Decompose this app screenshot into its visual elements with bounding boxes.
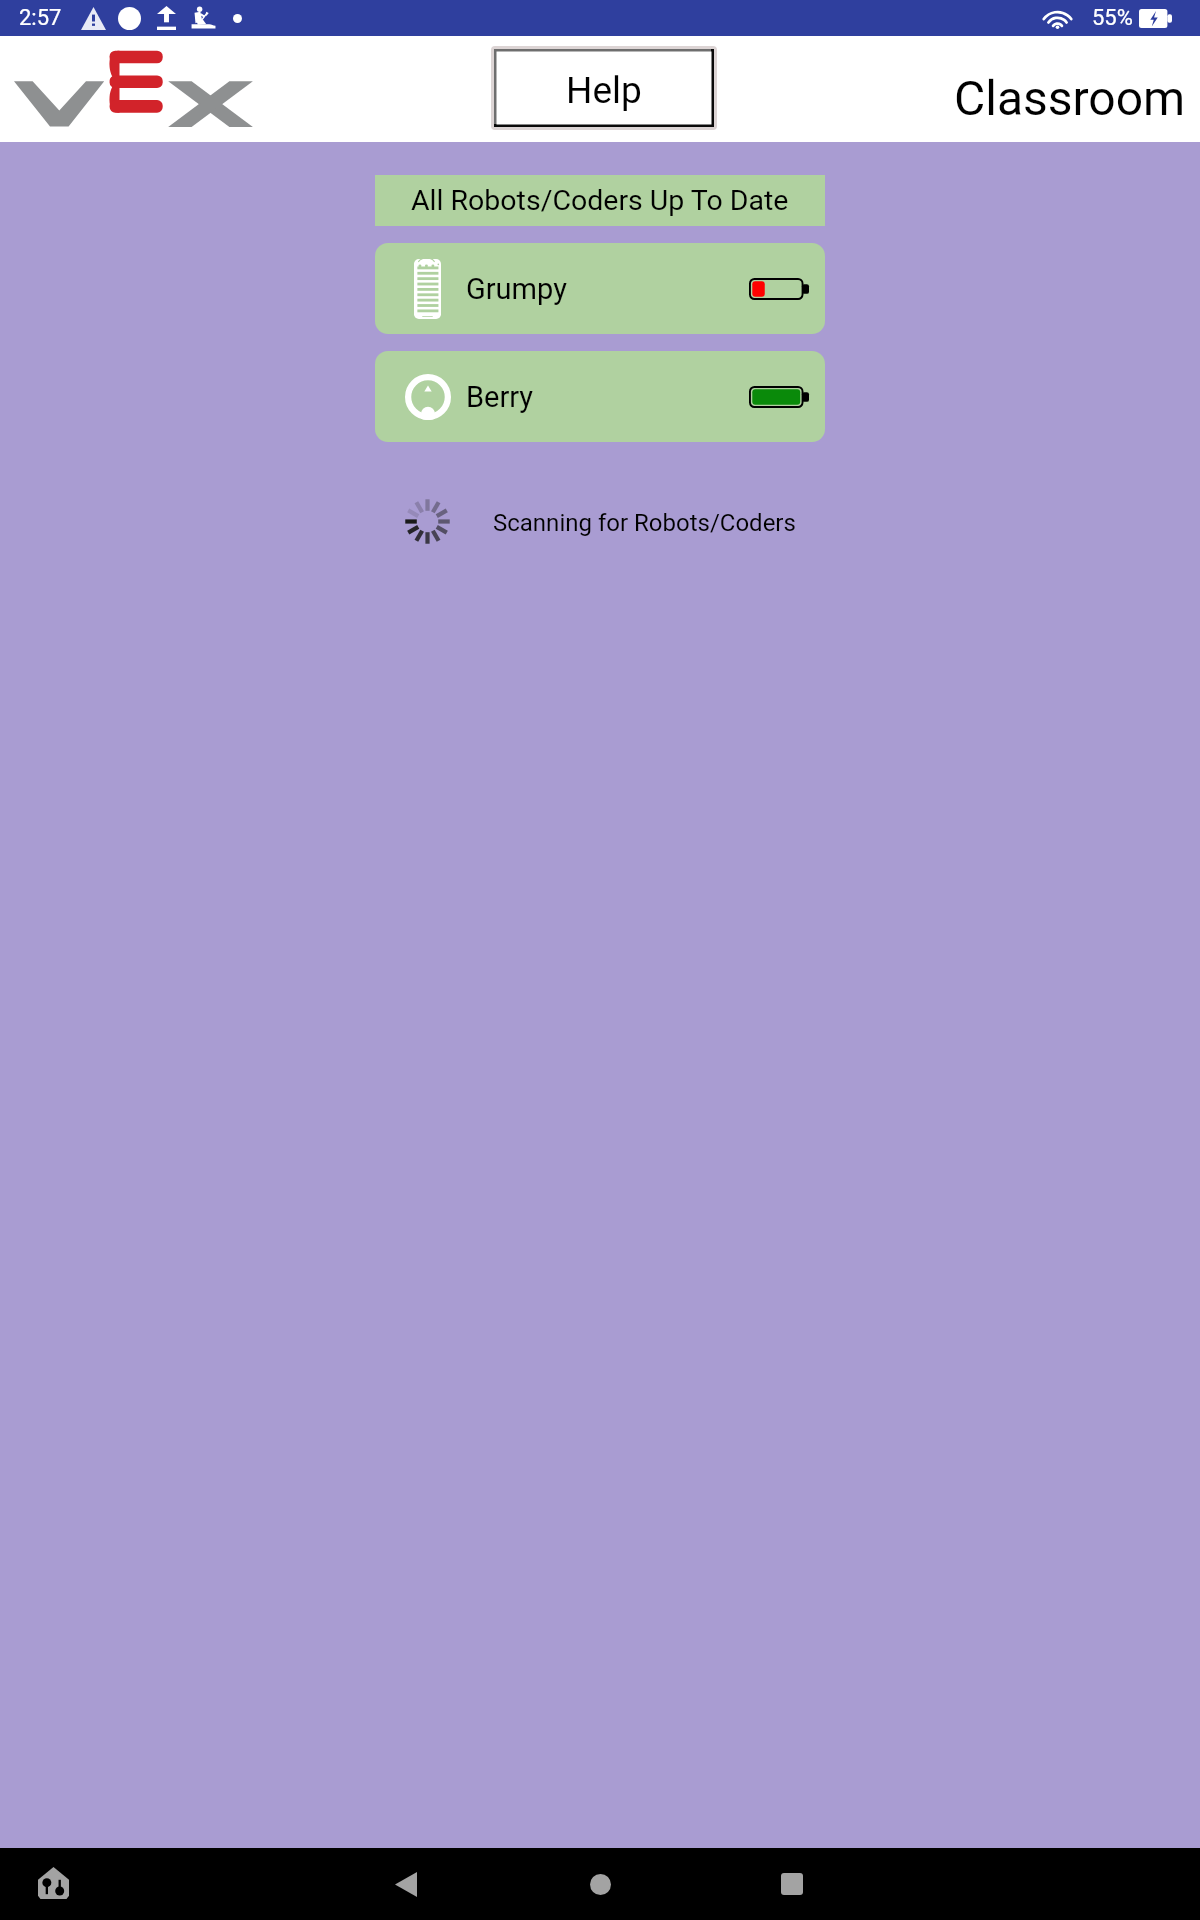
button[interactable]: Berry bbox=[375, 351, 825, 442]
button[interactable]: All Robots/Coders Up To Date bbox=[375, 175, 825, 226]
staticText: Classroom bbox=[954, 70, 1186, 126]
staticText: Help bbox=[566, 69, 642, 112]
staticText: All Robots/Coders Up To Date bbox=[411, 184, 789, 217]
button[interactable]: Home controls bbox=[31, 1860, 76, 1905]
button[interactable]: Recent apps bbox=[770, 1862, 814, 1906]
staticText: Scanning for Robots/Coders bbox=[493, 509, 796, 537]
staticText: Grumpy bbox=[466, 272, 567, 306]
button[interactable]: Home bbox=[578, 1862, 622, 1906]
button[interactable]: Grumpy bbox=[375, 243, 825, 334]
staticText: Berry bbox=[466, 380, 534, 414]
staticText: 55% bbox=[1092, 5, 1133, 31]
button[interactable]: Help bbox=[491, 46, 717, 130]
button[interactable]: Back bbox=[384, 1862, 428, 1906]
staticText: 2:57 bbox=[19, 5, 62, 31]
